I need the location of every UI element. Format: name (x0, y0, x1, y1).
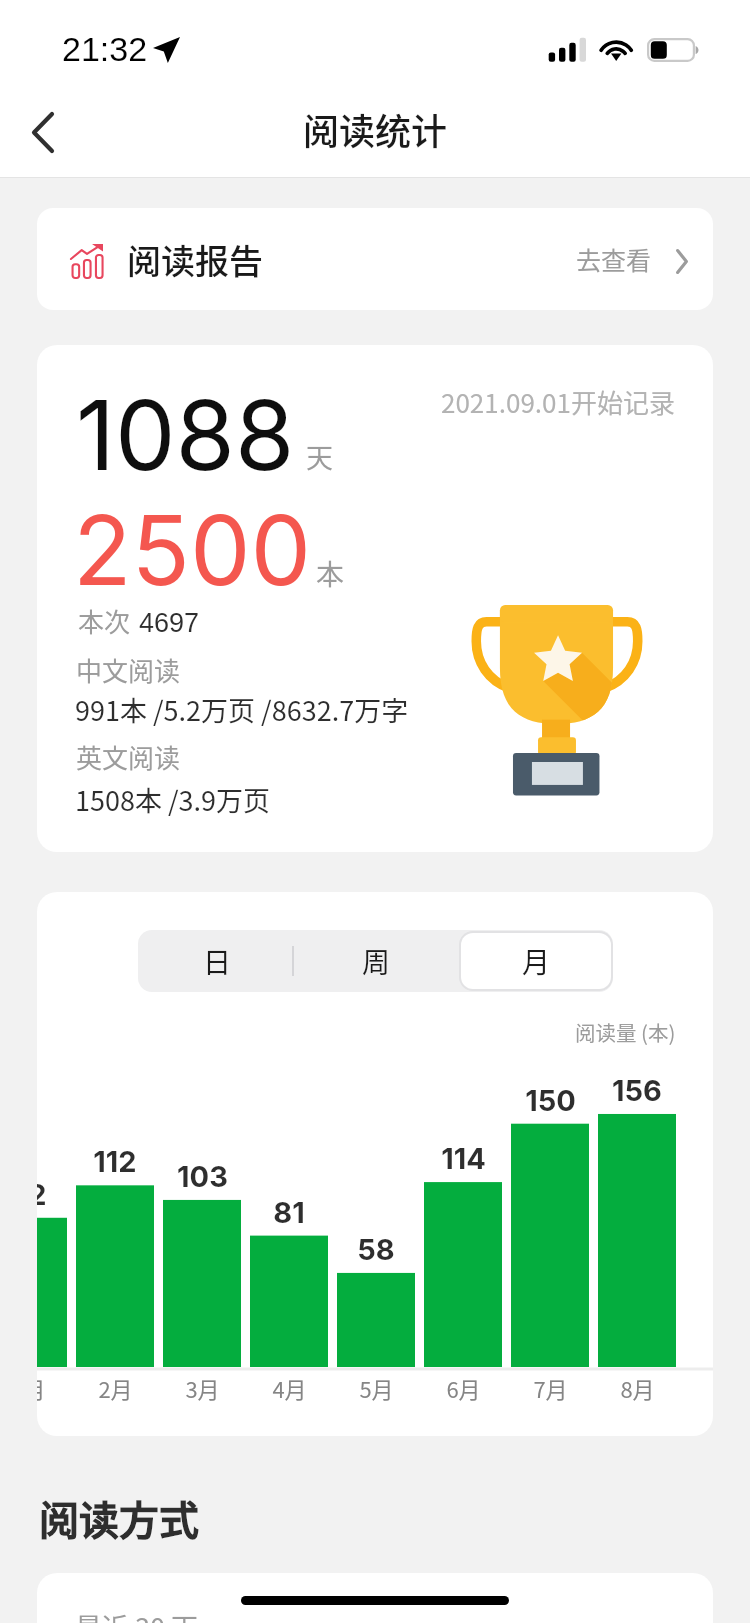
staticText: 21:32 (62, 30, 148, 68)
staticText: 1508本 /3.9万页 (75, 780, 271, 819)
staticText: 5月 (359, 1372, 394, 1404)
staticText: 8月 (620, 1372, 655, 1404)
staticText: 英文阅读 (76, 738, 181, 776)
staticText: 阅读量 (本) (575, 1017, 676, 1047)
staticText: 114 (441, 1141, 486, 1176)
staticText: 3月 (185, 1372, 220, 1404)
staticText: 58 (357, 1232, 395, 1267)
staticText: 92 (37, 1177, 47, 1212)
staticText: 103 (177, 1159, 228, 1194)
button[interactable]: 阅读报告 (37, 208, 713, 310)
staticText: 1月 (37, 1372, 46, 1404)
staticText: 2021.09.01开始记录 (441, 383, 675, 421)
staticText: 阅读方式 (39, 1489, 199, 1547)
staticText: 阅读统计 (303, 103, 448, 155)
staticText: 月 (522, 941, 551, 982)
staticText: 本 (316, 553, 345, 594)
staticText: 去查看 (576, 241, 652, 277)
staticText: 4月 (272, 1372, 307, 1404)
button[interactable]: 日 (138, 930, 297, 992)
staticText: 7月 (533, 1372, 568, 1404)
staticText: 最近 30 天 (75, 1607, 199, 1623)
staticText: 150 (525, 1083, 576, 1118)
staticText: 81 (273, 1195, 305, 1230)
button[interactable]: Back (0, 88, 86, 177)
staticText: 本次 (78, 602, 131, 640)
staticText: 112 (93, 1144, 137, 1179)
staticText: 阅读报告 (127, 235, 263, 284)
staticText: 2月 (98, 1372, 133, 1404)
staticText: 4697 (139, 608, 200, 638)
staticText: 日 (203, 941, 232, 982)
staticText: 6月 (446, 1372, 481, 1404)
staticText: 周 (362, 941, 391, 982)
button[interactable]: 月 (461, 933, 611, 989)
staticText: 991本 /5.2万页 /8632.7万字 (75, 690, 409, 729)
staticText: 2500 (73, 492, 312, 608)
staticText: 天 (306, 437, 333, 476)
staticText: 1088 (76, 377, 295, 493)
staticText: 中文阅读 (76, 651, 181, 689)
button[interactable]: 周 (297, 930, 455, 992)
staticText: 156 (612, 1073, 662, 1108)
